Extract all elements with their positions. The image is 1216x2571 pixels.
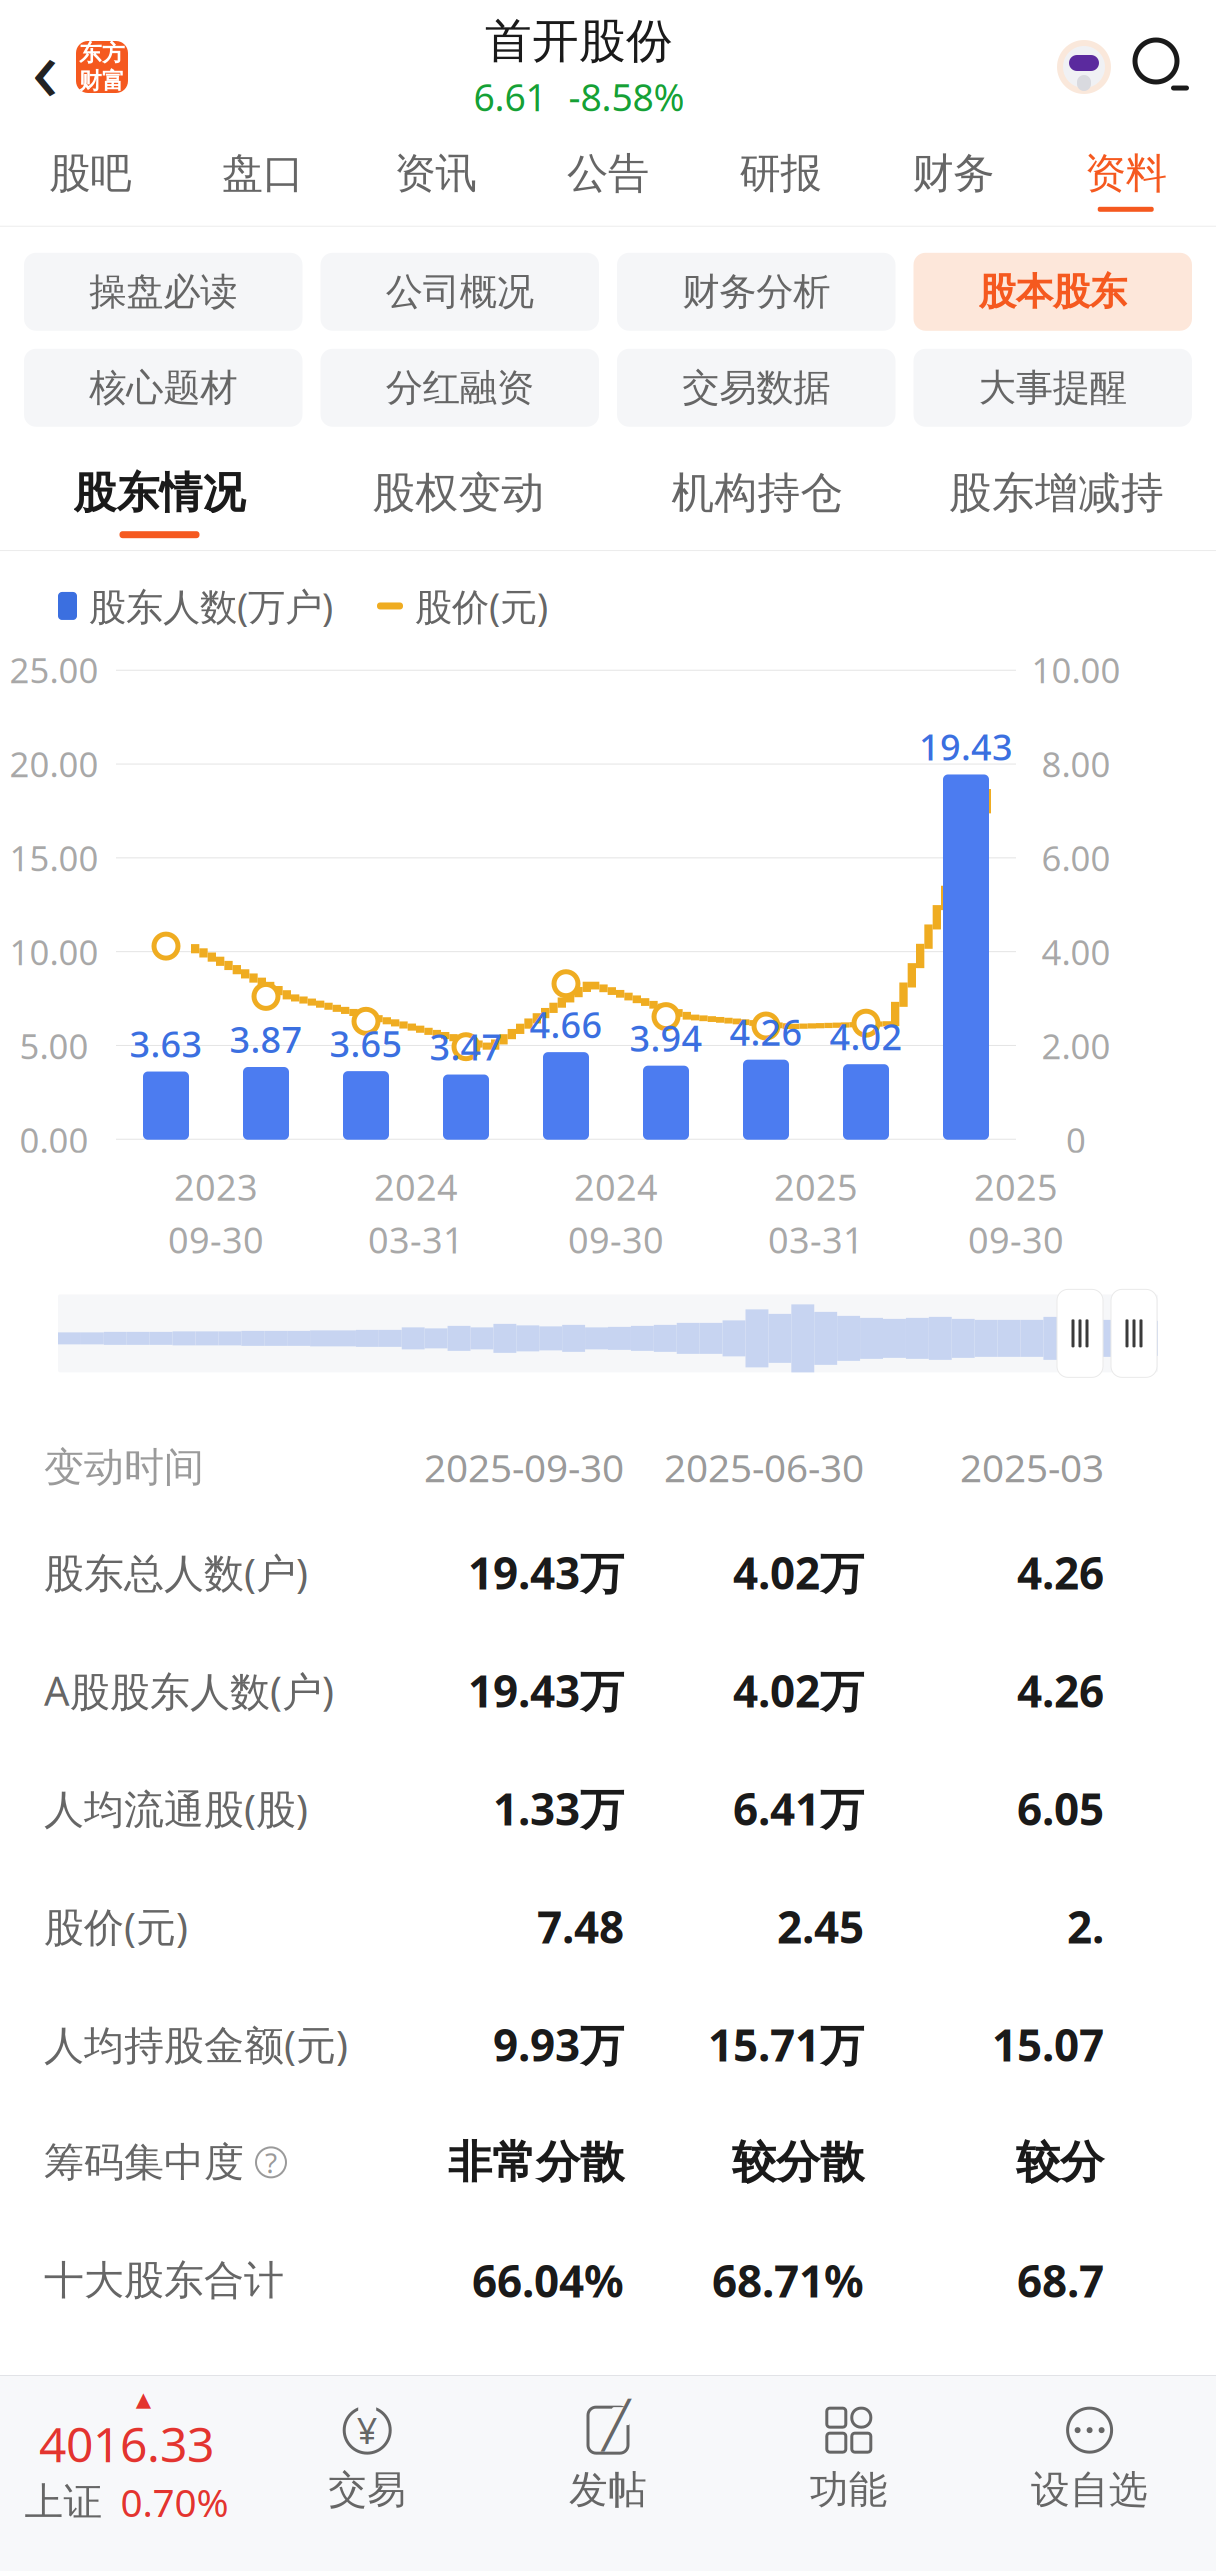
staticText: 筹码集中度 [44, 2138, 244, 2187]
staticText: 09-30 [968, 1216, 1064, 1263]
button[interactable]: 资讯 [349, 134, 522, 226]
staticText: 09-30 [568, 1216, 664, 1263]
staticText: 0.70% [120, 2476, 228, 2528]
staticText: 15.71万 [708, 2015, 864, 2074]
staticText: 股东人数(万户) [89, 581, 333, 631]
staticText: 变动时间 [44, 1443, 204, 1492]
button[interactable]: 设自选 [969, 2402, 1210, 2514]
staticText: 交易 [328, 2466, 406, 2514]
staticText: 上证 [24, 2478, 102, 2526]
staticText: 03-31 [368, 1216, 464, 1263]
staticText: 68.7 [1017, 2251, 1104, 2310]
staticText: 9.93万 [493, 2015, 624, 2074]
staticText: 3.94 [629, 1014, 702, 1062]
staticText: ▲ [136, 2388, 151, 2411]
button[interactable]: 公司概况 [320, 253, 599, 331]
staticText: 公司概况 [386, 269, 534, 315]
button[interactable]: ¥ [247, 2402, 488, 2514]
staticText: 十大股东合计 [44, 2256, 284, 2305]
button[interactable]: 财务分析 [617, 253, 895, 331]
staticText: 3.47 [429, 1023, 502, 1070]
staticText: 股权变动 [372, 467, 544, 519]
staticText: 0.00 [19, 1117, 88, 1163]
staticText: 财富 [79, 67, 125, 95]
staticText: 6.00 [1041, 835, 1110, 881]
staticText: 交易数据 [682, 365, 830, 411]
staticText: 2025-06-30 [664, 1442, 864, 1493]
staticText: 股本股东 [979, 269, 1127, 315]
staticText: 资讯 [394, 148, 476, 199]
staticText: 4.02万 [733, 1661, 864, 1720]
button[interactable]: 返回 [24, 34, 66, 100]
staticText: 03-31 [768, 1216, 864, 1263]
staticText: 财务分析 [682, 269, 830, 315]
staticText: 10.00 [9, 929, 98, 975]
staticText: 2.00 [1041, 1023, 1110, 1069]
button[interactable]: 搜索 [1114, 37, 1192, 97]
staticText: ? [265, 2144, 277, 2181]
staticText: 股吧 [49, 148, 131, 199]
button[interactable]: 上证指数 4016.33 [6, 2388, 247, 2528]
staticText: 操盘必读 [89, 269, 237, 315]
staticText: 股价(元) [44, 1900, 188, 1953]
staticText: 人均流通股(股) [44, 1782, 308, 1835]
staticText: 股东总人数(户) [44, 1546, 308, 1599]
staticText: 4.26 [1017, 1543, 1104, 1602]
button[interactable]: 核心题材 [24, 349, 302, 427]
staticText: 3.87 [229, 1015, 302, 1063]
staticText: 3.65 [329, 1019, 402, 1067]
staticText: 较分 [1016, 2135, 1104, 2189]
button[interactable]: 大事提醒 [913, 349, 1192, 427]
button[interactable]: 股权变动 [309, 455, 608, 550]
button[interactable]: 股东情况 [10, 455, 309, 550]
staticText: 3.63 [129, 1020, 202, 1067]
staticText: 盘口 [222, 148, 304, 199]
button[interactable]: 东方财富首页 [66, 41, 128, 93]
staticText: 功能 [810, 2466, 888, 2514]
staticText: 核心题材 [89, 365, 237, 411]
staticText: 公告 [567, 148, 649, 199]
staticText: 6.61 [473, 72, 546, 121]
button[interactable]: 区间终点 [1104, 1289, 1158, 1377]
staticText: 4016.33 [39, 2412, 214, 2475]
staticText: 1.33万 [493, 1779, 624, 1838]
button[interactable]: 财务 [867, 134, 1039, 226]
staticText: 0 [1066, 1117, 1086, 1163]
button[interactable]: 功能 [728, 2402, 969, 2514]
button[interactable]: ╱ [488, 2402, 728, 2514]
staticText: 2023 [174, 1163, 258, 1211]
staticText: 财务 [912, 148, 994, 199]
button[interactable]: 股东增减持 [907, 455, 1206, 550]
staticText: 4.02 [829, 1012, 902, 1060]
button[interactable]: 交易数据 [617, 349, 895, 427]
button[interactable]: 研报 [694, 134, 867, 226]
staticText: 19.43万 [468, 1543, 624, 1602]
button[interactable]: 股吧 [4, 134, 177, 226]
button[interactable]: 机构持仓 [608, 455, 907, 550]
button[interactable]: 操盘必读 [24, 253, 302, 331]
staticText: ¥ [357, 2406, 378, 2454]
staticText: A股股东人数(户) [44, 1664, 334, 1717]
staticText: 非常分散 [448, 2135, 624, 2189]
staticText: 人均持股金额(元) [44, 2018, 348, 2071]
staticText: 2025 [974, 1163, 1058, 1211]
button[interactable]: 公告 [522, 134, 694, 226]
staticText: 4.26 [1017, 1661, 1104, 1720]
staticText: 资料 [1085, 148, 1167, 199]
staticText: 股东情况 [73, 467, 245, 519]
button[interactable]: 智能助手 [1054, 37, 1114, 97]
staticText: 09-30 [168, 1216, 264, 1263]
button[interactable]: 区间起点 [1056, 1289, 1104, 1377]
button[interactable]: 分红融资 [320, 349, 599, 427]
staticText: ‹ [31, 9, 58, 125]
button[interactable]: 盘口 [177, 134, 349, 226]
staticText: 7.48 [537, 1897, 624, 1956]
button[interactable]: 资料 [1039, 134, 1212, 226]
staticText: 股价(元) [415, 581, 548, 631]
staticText: 东方 [79, 39, 125, 67]
staticText: 发帖 [569, 2466, 647, 2514]
staticText: 25.00 [9, 647, 98, 693]
staticText: 20.00 [9, 741, 98, 787]
staticText: 8.00 [1041, 741, 1110, 787]
button[interactable]: 股本股东 [913, 253, 1192, 331]
